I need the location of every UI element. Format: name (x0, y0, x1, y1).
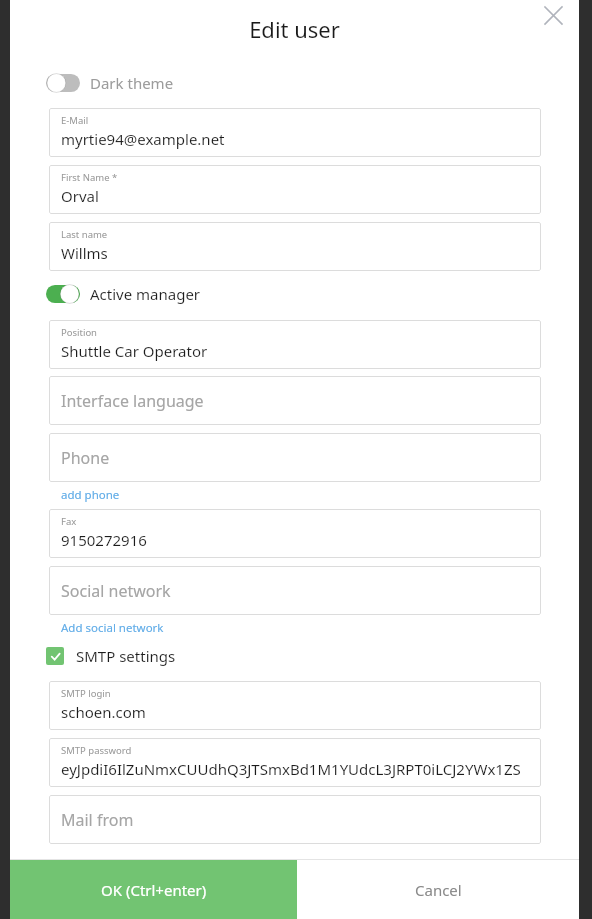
staticText: SMTP password (61, 744, 132, 757)
button[interactable]: Last name (49, 222, 541, 271)
button[interactable]: Interface language (49, 376, 541, 425)
staticText: Active manager (90, 284, 201, 304)
button[interactable]: Position (49, 320, 541, 369)
button[interactable]: Cancel (297, 860, 579, 919)
staticText: Shuttle Car Operator (61, 341, 208, 361)
staticText: Edit user (249, 14, 340, 44)
staticText: 9150272916 (61, 530, 147, 550)
staticText: E-Mail (61, 114, 89, 127)
staticText: Dark theme (90, 73, 174, 93)
button[interactable]: Add social network (60, 619, 165, 637)
staticText: Cancel (415, 880, 462, 900)
button[interactable]: Mail from (49, 795, 541, 844)
staticText: Orval (61, 186, 99, 206)
button[interactable]: add phone (60, 486, 121, 504)
staticText: SMTP login (61, 687, 111, 700)
button[interactable]: Fax (49, 509, 541, 558)
button[interactable]: SMTP password (49, 738, 541, 787)
button[interactable]: E-Mail (49, 108, 541, 157)
staticText: Willms (61, 243, 108, 263)
staticText: Fax (61, 515, 77, 528)
button[interactable]: First Name * (49, 165, 541, 214)
button[interactable]: Close (538, 0, 568, 30)
staticText: Add social network (61, 620, 164, 636)
button[interactable]: OK (Ctrl+enter) (10, 860, 297, 919)
staticText: schoen.com (61, 702, 146, 722)
staticText: Social network (61, 580, 171, 602)
staticText: Phone (61, 447, 110, 469)
button[interactable]: SMTP settings (46, 646, 176, 666)
staticText: eyJpdiI6IlZuNmxCUUdhQ3JTSmxBd1M1YUdcL3JR… (61, 759, 521, 779)
staticText: Mail from (61, 809, 134, 831)
button[interactable]: Social network (49, 566, 541, 615)
staticText: myrtie94@example.net (61, 129, 225, 149)
staticText: SMTP settings (76, 646, 176, 666)
staticText: Interface language (61, 390, 204, 412)
staticText: Position (61, 326, 97, 339)
staticText: add phone (61, 487, 120, 503)
button[interactable]: SMTP login (49, 681, 541, 730)
button[interactable]: Phone (49, 433, 541, 482)
button[interactable]: Dark theme (46, 72, 174, 94)
staticText: OK (Ctrl+enter) (101, 880, 207, 900)
staticText: Last name (61, 228, 108, 241)
staticText: First Name * (61, 171, 118, 184)
button[interactable]: Active manager (46, 283, 201, 305)
